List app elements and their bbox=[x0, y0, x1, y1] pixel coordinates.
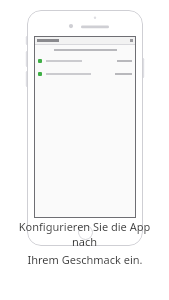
staticText: Konfigurieren Sie die App nach bbox=[6, 219, 163, 249]
button[interactable] bbox=[34, 56, 136, 65]
staticText: Ihrem Geschmack ein. bbox=[27, 252, 143, 267]
button[interactable] bbox=[34, 69, 136, 78]
button[interactable]: Menu bbox=[34, 36, 136, 44]
button[interactable]: Home bbox=[78, 225, 93, 240]
